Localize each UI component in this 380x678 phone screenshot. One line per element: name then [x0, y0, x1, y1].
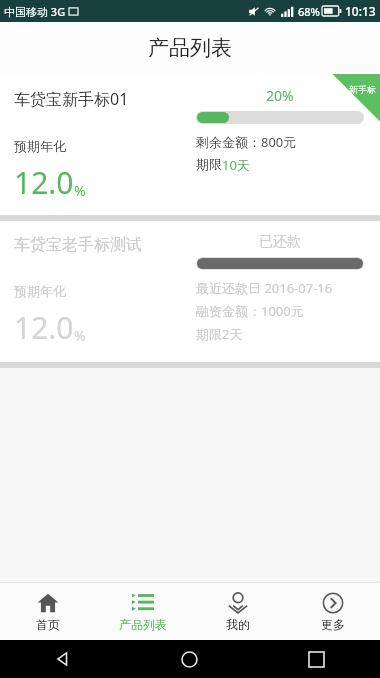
staticText: 期限2天 [196, 325, 243, 343]
staticText: 已还款 [259, 233, 301, 251]
button[interactable]: 更多 [285, 583, 380, 640]
staticText: 预期年化 [14, 138, 66, 154]
staticText: 12.0 [14, 162, 74, 203]
staticText: 中国移动 3G [4, 4, 66, 19]
staticText: 20% [266, 86, 294, 105]
staticText: 剩余金额：800元 [196, 133, 297, 151]
staticText: 更多 [321, 617, 345, 632]
staticText: 产品列表 [148, 35, 232, 61]
other: 更多 [322, 592, 344, 614]
staticText: 产品列表 [119, 617, 167, 632]
staticText: 期限 [196, 156, 222, 172]
staticText: 首页 [36, 617, 60, 632]
button[interactable]: 首页 [0, 583, 95, 640]
staticText: % [74, 326, 86, 345]
staticText: 车贷宝老手标测试 [14, 235, 142, 255]
other: Home [181, 651, 198, 668]
other: Back [55, 651, 71, 667]
button[interactable]: 产品列表 [95, 583, 190, 640]
staticText: 68% [298, 4, 320, 19]
staticText: 新手标 [349, 84, 376, 95]
staticText: 10天 [222, 156, 250, 174]
staticText: % [74, 181, 86, 200]
staticText: 车贷宝新手标01 [14, 88, 129, 110]
staticText: 预期年化 [14, 283, 66, 299]
button[interactable]: 我的 [190, 583, 285, 640]
staticText: 我的 [226, 617, 250, 632]
staticText: 最近还款日 2016-07-16 [196, 279, 333, 297]
staticText: 10:13 [345, 3, 376, 19]
staticText: 融资金额：1000元 [196, 302, 304, 320]
other: 产品列表 [132, 592, 154, 614]
button[interactable]: 车贷宝老手标测试 [0, 221, 380, 362]
staticText: 12.0 [14, 307, 74, 348]
button[interactable]: 车贷宝新手标01 [0, 74, 380, 215]
other: Recents [309, 652, 324, 667]
other: 我的 [227, 592, 249, 614]
other: 首页 [37, 592, 59, 614]
